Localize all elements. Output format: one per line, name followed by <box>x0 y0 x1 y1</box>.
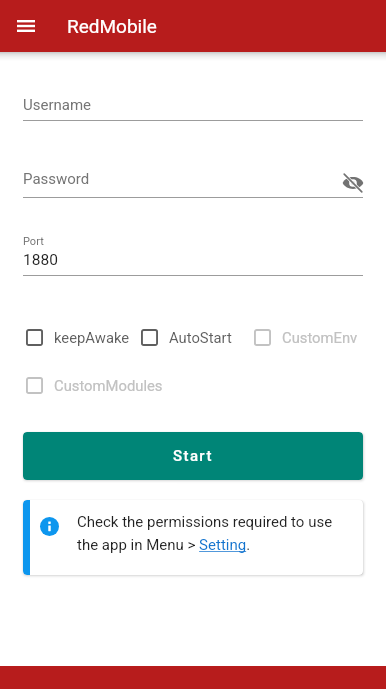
staticText: CustomEnv <box>282 329 358 346</box>
staticText: keepAwake <box>54 329 130 346</box>
button[interactable]: Check the permissions required to use th… <box>23 500 363 575</box>
staticText: Username <box>23 96 92 114</box>
staticText: Password <box>23 170 90 188</box>
button[interactable]: Port <box>23 235 363 276</box>
staticText: Check the permissions required to use th… <box>77 513 339 554</box>
button[interactable]: CustomModules <box>23 377 163 394</box>
button[interactable]: Open navigation menu <box>8 8 44 44</box>
button[interactable]: CustomEnv <box>251 329 358 346</box>
button[interactable]: Start <box>23 432 363 480</box>
staticText: Port <box>23 235 44 248</box>
button[interactable]: keepAwake <box>23 329 130 346</box>
staticText: AutoStart <box>169 329 232 346</box>
staticText: Start <box>173 447 213 465</box>
staticText: RedMobile <box>67 15 157 37</box>
button[interactable]: Show password <box>341 171 365 195</box>
button[interactable]: Password <box>23 167 363 198</box>
staticText: 1880 <box>23 251 58 269</box>
button[interactable]: AutoStart <box>138 329 232 346</box>
button[interactable]: Username <box>23 96 363 121</box>
staticText: CustomModules <box>54 377 163 394</box>
